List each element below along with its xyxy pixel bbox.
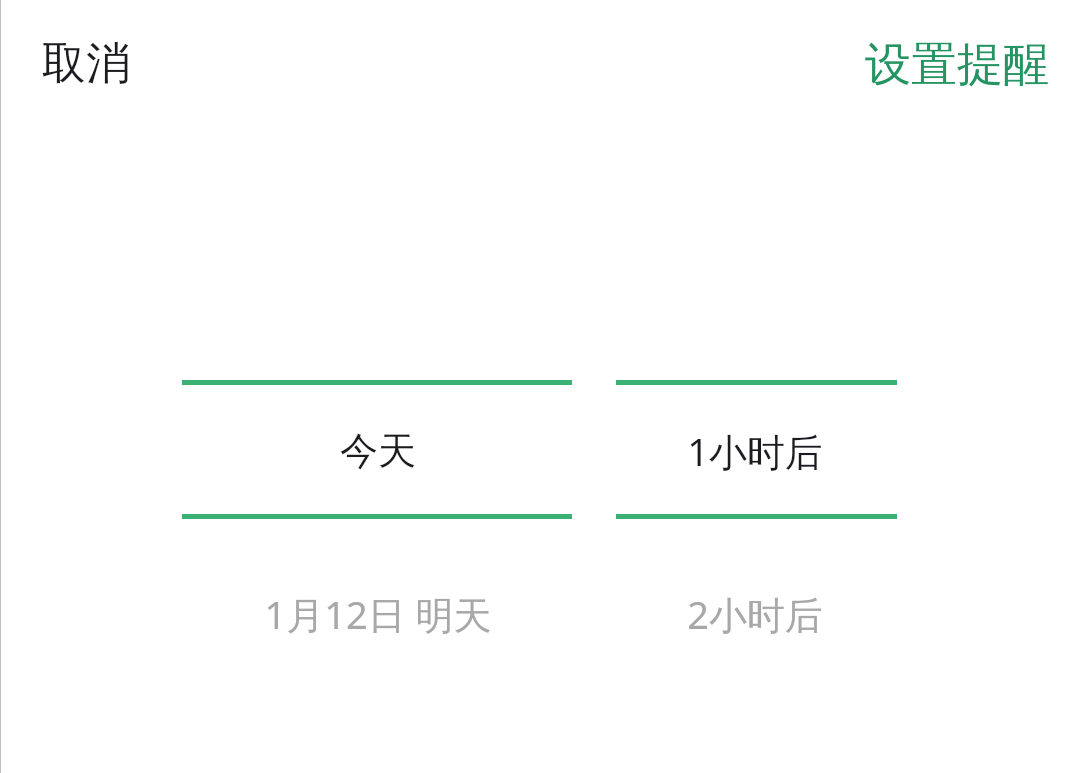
button[interactable]: 取消 xyxy=(24,22,148,105)
button[interactable]: 2小时后 xyxy=(616,552,897,676)
button[interactable]: 今天 xyxy=(182,389,572,513)
staticText: 设置提醒 xyxy=(865,36,1049,94)
staticText: 1小时后 xyxy=(687,425,823,477)
staticText: 取消 xyxy=(42,36,130,91)
button[interactable]: 设置提醒 xyxy=(847,22,1067,108)
staticText: 1月12日 明天 xyxy=(264,588,492,640)
button[interactable]: 1月12日 明天 xyxy=(182,552,572,676)
staticText: 2小时后 xyxy=(687,588,823,640)
staticText: 今天 xyxy=(340,427,416,475)
button[interactable]: 1小时后 xyxy=(616,389,897,513)
